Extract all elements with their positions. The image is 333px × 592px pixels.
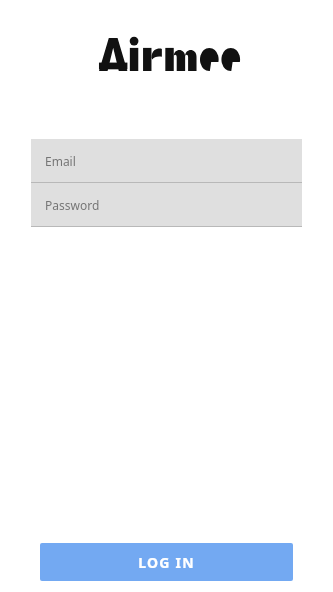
staticText: Password	[45, 197, 100, 213]
staticText: Email	[45, 153, 76, 169]
button[interactable]: Email	[31, 139, 302, 183]
button[interactable]: Log in	[40, 543, 293, 581]
button[interactable]: Password	[31, 183, 302, 227]
staticText: LOG IN	[138, 553, 195, 572]
